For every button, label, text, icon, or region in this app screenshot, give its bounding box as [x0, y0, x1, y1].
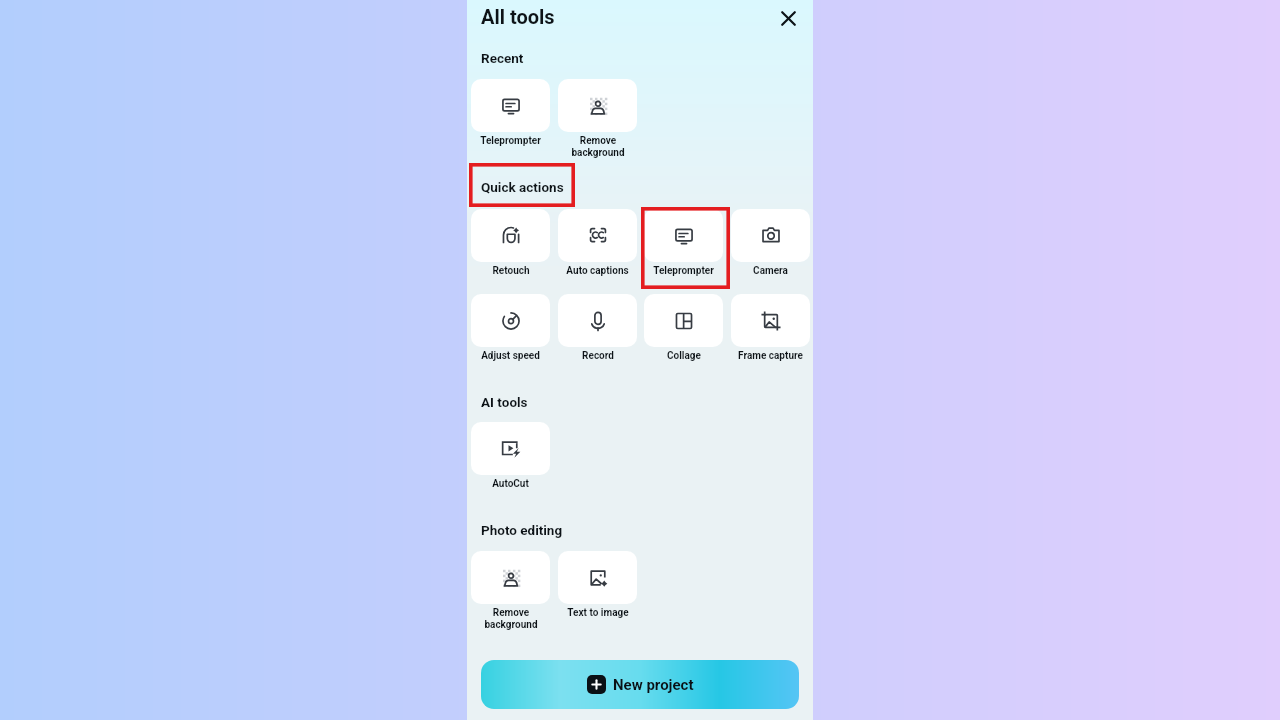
staticText: Frame capture: [738, 350, 803, 362]
button[interactable]: New project: [481, 660, 799, 709]
button[interactable]: Collage: [644, 294, 723, 362]
button[interactable]: Close: [777, 7, 799, 29]
staticText: Camera: [753, 265, 788, 277]
staticText: Photo editing: [481, 522, 563, 538]
button[interactable]: Record: [558, 294, 637, 362]
button[interactable]: Text to image: [558, 551, 637, 619]
staticText: Recent: [481, 50, 524, 66]
staticText: AI tools: [481, 394, 528, 410]
staticText: Collage: [667, 350, 701, 362]
button[interactable]: AutoCut: [471, 422, 550, 490]
button[interactable]: Adjust speed: [471, 294, 550, 362]
staticText: Teleprompter: [480, 135, 541, 147]
button[interactable]: Auto captions: [558, 209, 637, 277]
staticText: New project: [613, 676, 694, 694]
staticText: Record: [582, 350, 614, 362]
staticText: Teleprompter: [653, 265, 714, 277]
staticText: Text to image: [567, 607, 629, 619]
staticText: AutoCut: [492, 478, 529, 490]
button[interactable]: Remove background: [558, 79, 637, 158]
staticText: Adjust speed: [481, 350, 540, 362]
button[interactable]: Teleprompter: [471, 79, 550, 147]
button[interactable]: Remove background: [471, 551, 550, 630]
button[interactable]: Frame capture: [731, 294, 810, 362]
staticText: Quick actions: [481, 179, 564, 195]
button[interactable]: Retouch: [471, 209, 550, 277]
staticText: Auto captions: [566, 265, 629, 277]
button[interactable]: Teleprompter: [644, 209, 723, 277]
staticText: Remove background: [484, 607, 538, 630]
staticText: Retouch: [492, 265, 530, 277]
button[interactable]: Camera: [731, 209, 810, 277]
staticText: Remove background: [571, 135, 625, 158]
staticText: All tools: [481, 5, 555, 28]
